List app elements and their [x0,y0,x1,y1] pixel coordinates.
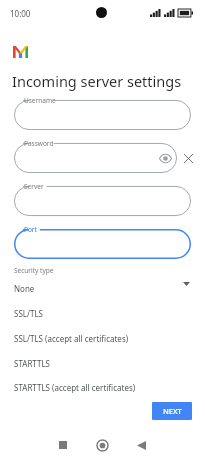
button[interactable]: Clear password [180,150,197,167]
staticText: NEXT [163,406,182,416]
button[interactable]: SSL/TLS [5,301,172,326]
staticText: Password [24,139,54,148]
staticText: STARTTLS [14,358,51,369]
button[interactable]: STARTTLS [5,351,172,376]
staticText: SSL/TLS (accept all certificates) [14,333,129,344]
button[interactable]: Username [14,100,191,130]
button[interactable]: Server [14,186,191,216]
button[interactable]: NEXT [152,402,192,420]
staticText: STARTTLS (accept all certificates) [14,382,136,393]
staticText: None [14,283,35,294]
button[interactable]: Port [14,229,191,259]
button[interactable]: SSL/TLS (accept all certificates) [5,326,172,351]
staticText: Port [24,225,37,234]
staticText: Security type [14,266,54,275]
button[interactable]: None [5,275,172,301]
button[interactable]: Password [14,143,177,173]
button[interactable]: Recent apps [55,437,71,453]
staticText: SSL/TLS [14,308,43,319]
button[interactable]: Back [133,437,149,453]
button[interactable]: Show password [157,150,174,167]
staticText: Username [24,96,56,105]
staticText: 10:00 [10,8,31,19]
staticText: Incoming server settings [12,71,182,91]
button[interactable]: Home [94,437,110,453]
button[interactable]: STARTTLS (accept all certificates) [5,376,172,399]
button[interactable]: Open security type menu [180,278,192,290]
staticText: Server [24,182,44,191]
